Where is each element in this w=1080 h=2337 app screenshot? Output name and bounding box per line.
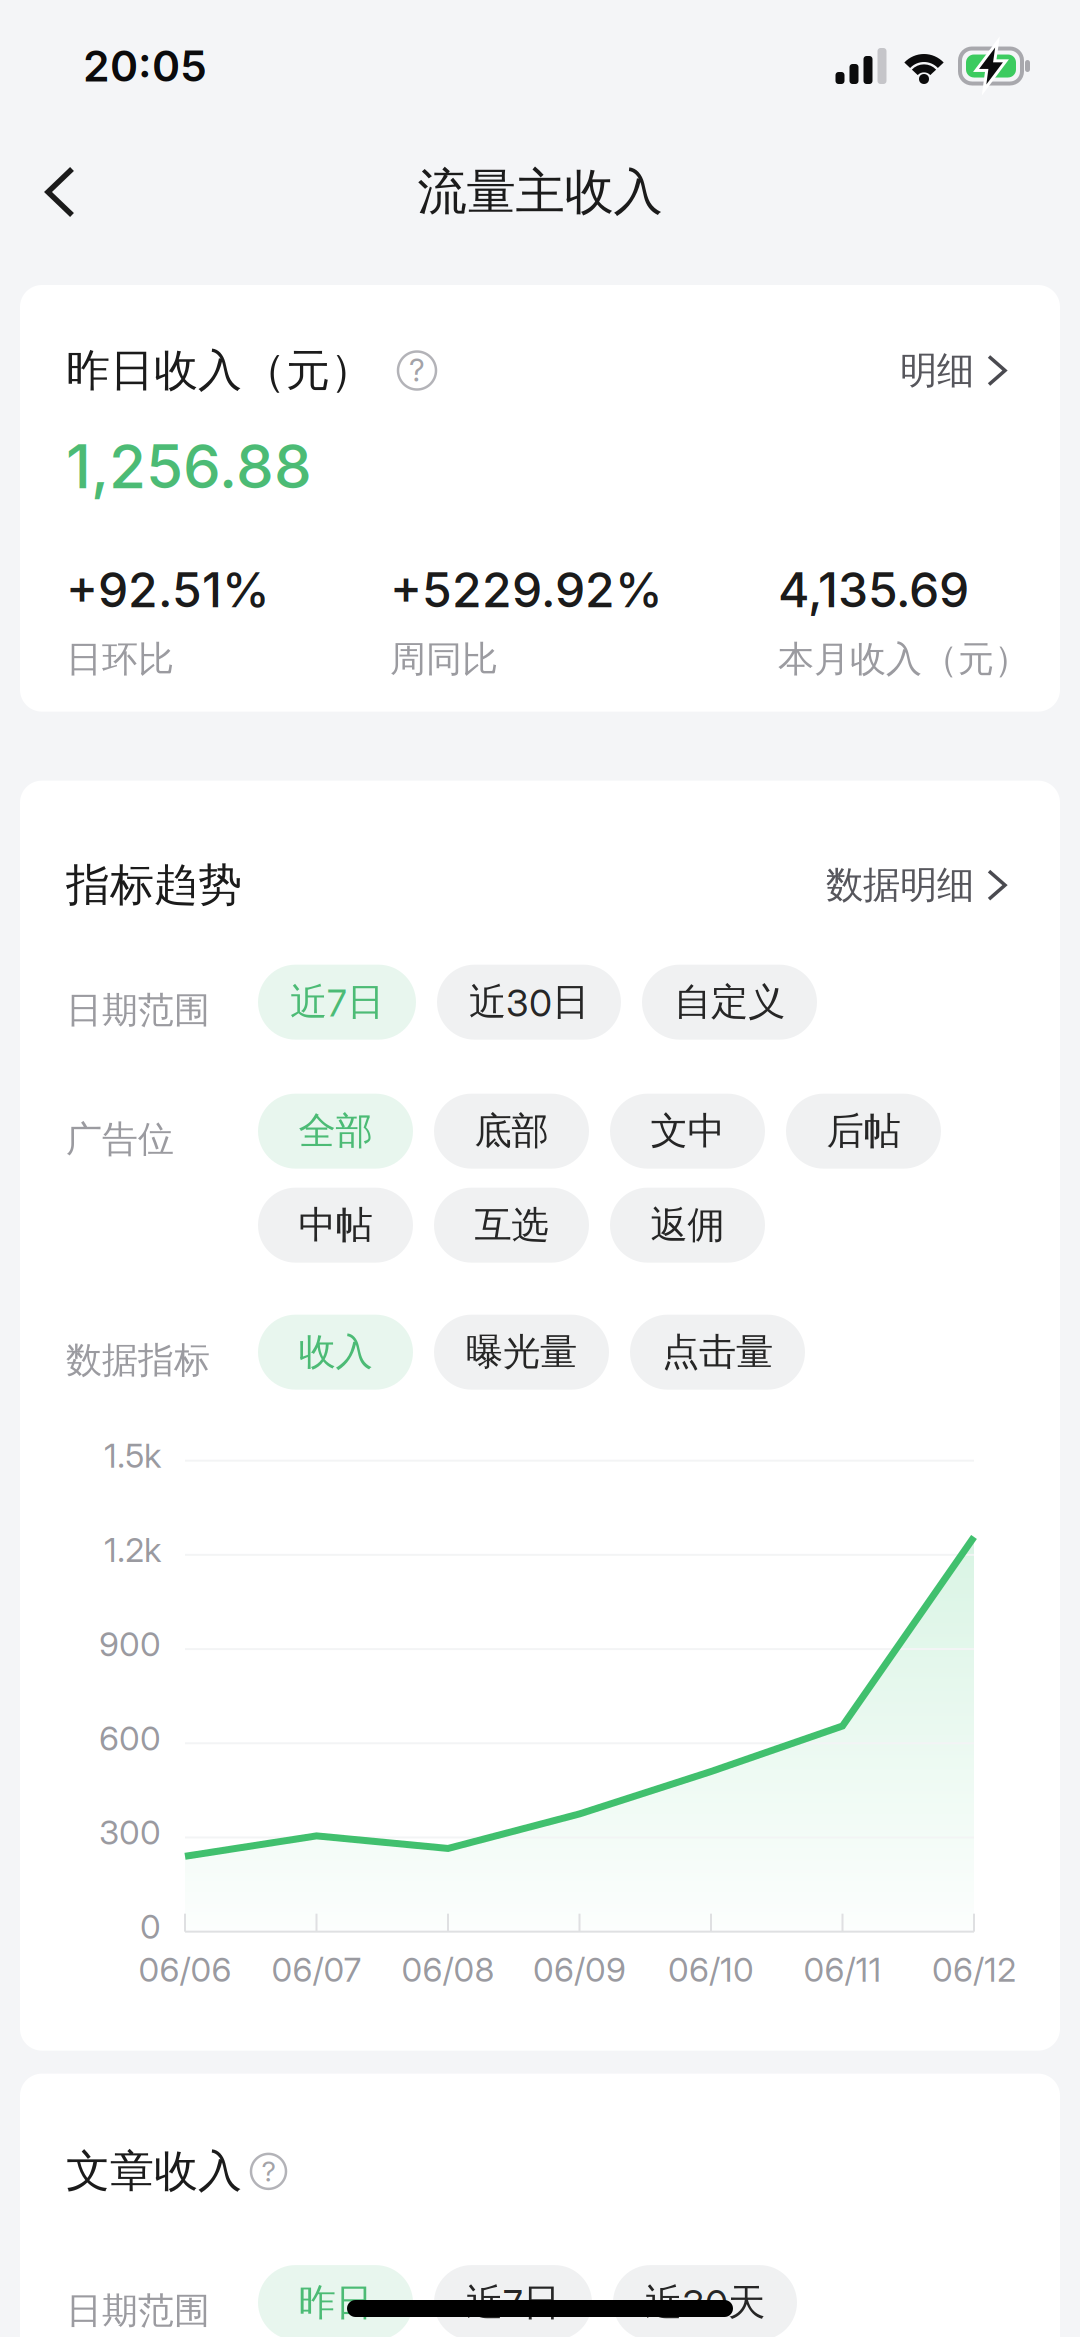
button[interactable]: 文中	[610, 1094, 765, 1169]
staticText: 近7日	[466, 2279, 560, 2326]
button[interactable]: 近30日	[437, 965, 621, 1040]
staticText: 本月收入（元）	[778, 637, 1030, 682]
staticText: +5229.92%	[390, 561, 663, 619]
staticText: 06/08	[401, 1949, 494, 1990]
staticText: 周同比	[390, 637, 498, 682]
button[interactable]: 点击量	[630, 1315, 805, 1390]
button[interactable]: 全部	[258, 1094, 413, 1169]
staticText: 曝光量	[466, 1329, 577, 1376]
staticText: 返佣	[650, 1202, 724, 1249]
button[interactable]: 中帖	[258, 1188, 413, 1263]
staticText: 06/07	[271, 1949, 361, 1990]
staticText: 600	[99, 1718, 161, 1758]
staticText: 流量主收入	[417, 161, 662, 223]
staticText: 日期范围	[66, 2288, 210, 2333]
button[interactable]: 近30天	[613, 2265, 797, 2337]
staticText: 06/06	[138, 1949, 231, 1990]
staticText: 数据指标	[66, 1338, 210, 1383]
staticText: 全部	[298, 1108, 372, 1155]
staticText: 300	[99, 1812, 161, 1853]
staticText: 收入	[298, 1329, 372, 1376]
staticText: 指标趋势	[66, 857, 242, 913]
staticText: ?	[261, 2154, 275, 2188]
staticText: 后帖	[826, 1108, 900, 1155]
button[interactable]: 返佣	[610, 1188, 765, 1263]
staticText: 1.2k	[104, 1530, 161, 1570]
staticText: 06/09	[533, 1949, 626, 1990]
staticText: 1.5k	[104, 1435, 161, 1476]
staticText: 06/12	[932, 1949, 1016, 1990]
staticText: 4,135.69	[778, 561, 969, 619]
button[interactable]: 自定义	[642, 965, 817, 1040]
button[interactable]: 数据明细	[826, 854, 1014, 917]
staticText: 文章收入	[66, 2144, 242, 2199]
staticText: 点击量	[662, 1329, 773, 1376]
staticText: 昨日	[298, 2279, 372, 2326]
staticText: 广告位	[66, 1117, 174, 1162]
staticText: 900	[99, 1624, 161, 1664]
staticText: 底部	[474, 1108, 548, 1155]
button[interactable]: 曝光量	[434, 1315, 609, 1390]
staticText: +92.51%	[66, 561, 270, 619]
button[interactable]: 底部	[434, 1094, 589, 1169]
button[interactable]: Back	[0, 141, 116, 243]
button[interactable]: 收入	[258, 1315, 413, 1390]
staticText: 06/10	[668, 1949, 754, 1990]
staticText: 文中	[650, 1108, 724, 1155]
staticText: 06/11	[803, 1949, 881, 1990]
staticText: 日环比	[66, 637, 174, 682]
staticText: 近30天	[645, 2279, 765, 2326]
staticText: 日期范围	[66, 988, 210, 1033]
button[interactable]: 昨日	[258, 2265, 413, 2337]
staticText: 昨日收入（元）	[66, 343, 374, 398]
button[interactable]: 近7日	[434, 2265, 592, 2337]
staticText: 20:05	[83, 40, 207, 92]
staticText: 近30日	[469, 979, 589, 1026]
staticText: 近7日	[290, 979, 384, 1026]
staticText: 中帖	[298, 1202, 372, 1249]
button[interactable]: 互选	[434, 1188, 589, 1263]
staticText: ?	[409, 352, 425, 389]
button[interactable]: 后帖	[786, 1094, 941, 1169]
staticText: 0	[140, 1906, 161, 1947]
staticText: 1,256.88	[66, 430, 312, 503]
staticText: 数据明细	[826, 862, 974, 909]
button[interactable]: 近7日	[258, 965, 416, 1040]
staticText: 自定义	[674, 979, 785, 1026]
staticText: 明细	[900, 347, 974, 394]
button[interactable]: 明细	[900, 339, 1014, 402]
staticText: 互选	[474, 1202, 548, 1249]
